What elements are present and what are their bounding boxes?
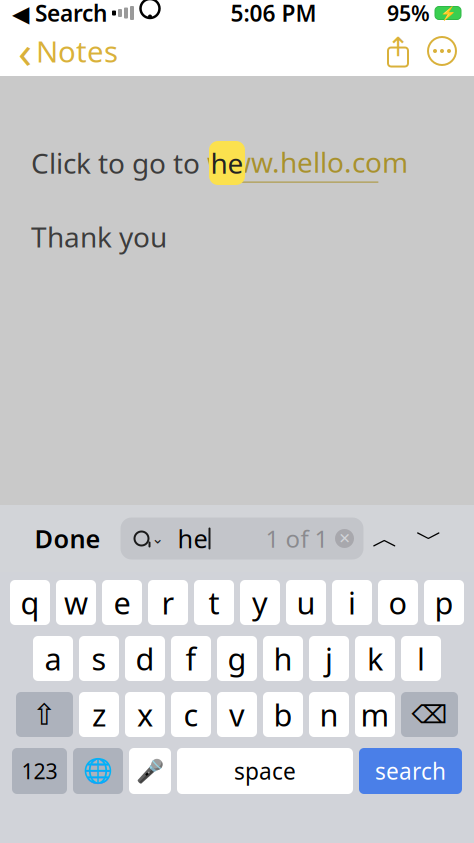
staticText: ⌫: [411, 700, 447, 729]
staticText: 🎤: [136, 758, 164, 784]
button[interactable]: j: [309, 636, 349, 681]
button[interactable]: f: [171, 636, 211, 681]
staticText: Thank you: [31, 218, 167, 255]
staticText: r: [161, 582, 174, 623]
staticText: Notes: [36, 31, 118, 70]
button[interactable]: g: [217, 636, 257, 681]
staticText: t: [208, 582, 219, 623]
button[interactable]: Done: [24, 518, 110, 558]
staticText: ︿: [372, 522, 399, 555]
button[interactable]: w: [56, 580, 96, 625]
staticText: ✕: [338, 530, 350, 547]
button[interactable]: i: [332, 580, 372, 625]
button[interactable]: ⌄: [120, 517, 363, 559]
staticText: 95%: [387, 0, 430, 27]
button[interactable]: v: [217, 692, 257, 737]
button[interactable]: n: [309, 692, 349, 737]
button[interactable]: Dictate: [129, 748, 171, 794]
button[interactable]: 123: [12, 748, 67, 794]
button[interactable]: t: [194, 580, 234, 625]
staticText: ﹀: [416, 522, 443, 555]
staticText: c: [183, 694, 198, 735]
button[interactable]: y: [240, 580, 280, 625]
button[interactable]: Previous result: [363, 516, 407, 560]
staticText: he: [177, 522, 207, 555]
staticText: ⇧: [32, 698, 57, 731]
staticText: m: [360, 694, 389, 735]
staticText: g: [227, 638, 246, 679]
staticText: www.hello.com: [207, 143, 408, 181]
button[interactable]: Shift: [16, 692, 73, 737]
button[interactable]: Next result: [407, 516, 451, 560]
staticText: a: [44, 638, 61, 679]
staticText: f: [185, 638, 196, 679]
button[interactable]: p: [424, 580, 464, 625]
button[interactable]: z: [79, 692, 119, 737]
staticText: 🌐: [83, 757, 113, 785]
button[interactable]: c: [171, 692, 211, 737]
button[interactable]: u: [286, 580, 326, 625]
button[interactable]: h: [263, 636, 303, 681]
staticText: 5:06 PM: [230, 0, 316, 28]
button[interactable]: search: [359, 748, 462, 794]
staticText: b: [273, 694, 292, 735]
button[interactable]: Share: [376, 29, 420, 73]
staticText: Click to go to: [31, 144, 207, 182]
staticText: k: [367, 638, 383, 679]
staticText: l: [417, 638, 425, 679]
staticText: s: [91, 638, 106, 679]
button[interactable]: Next keyboard: [73, 748, 123, 794]
staticText: he: [210, 144, 243, 182]
staticText: v: [229, 694, 245, 735]
staticText: w: [64, 582, 88, 623]
staticText: p: [434, 582, 453, 623]
button[interactable]: s: [79, 636, 119, 681]
staticText: ‹: [18, 21, 32, 81]
button[interactable]: m: [355, 692, 395, 737]
button[interactable]: q: [10, 580, 50, 625]
staticText: ⌄: [151, 530, 163, 547]
staticText: q: [20, 582, 39, 623]
staticText: o: [388, 582, 407, 623]
button[interactable]: d: [125, 636, 165, 681]
button[interactable]: b: [263, 692, 303, 737]
button[interactable]: space: [177, 748, 353, 794]
staticText: i: [348, 582, 356, 623]
staticText: n: [319, 694, 338, 735]
staticText: ◀ Search: [12, 0, 107, 28]
staticText: ↑: [387, 32, 409, 62]
button[interactable]: x: [125, 692, 165, 737]
button[interactable]: Delete: [401, 692, 458, 737]
button[interactable]: ‹: [10, 29, 126, 73]
button[interactable]: More options: [420, 29, 464, 73]
staticText: u: [296, 582, 315, 623]
button[interactable]: a: [33, 636, 73, 681]
button[interactable]: e: [102, 580, 142, 625]
staticText: space: [234, 756, 296, 786]
button[interactable]: k: [355, 636, 395, 681]
staticText: ⚡: [439, 5, 456, 21]
staticText: y: [252, 582, 268, 623]
staticText: search: [375, 756, 446, 786]
button[interactable]: o: [378, 580, 418, 625]
staticText: e: [113, 582, 130, 623]
staticText: Done: [34, 522, 100, 555]
staticText: d: [135, 638, 154, 679]
staticText: j: [325, 638, 333, 679]
staticText: x: [137, 694, 153, 735]
button[interactable]: l: [401, 636, 441, 681]
staticText: 1 of 1: [265, 523, 328, 554]
staticText: h: [273, 638, 292, 679]
button[interactable]: r: [148, 580, 188, 625]
staticText: 123: [21, 757, 57, 785]
staticText: z: [92, 694, 106, 735]
